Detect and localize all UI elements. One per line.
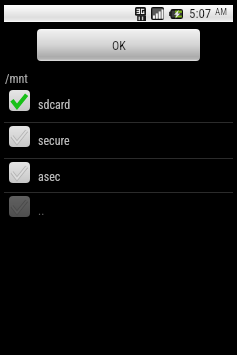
button[interactable]: asec [4, 159, 233, 193]
staticText: .. [38, 204, 45, 218]
staticText: secure [38, 134, 70, 148]
staticText: /mnt [5, 72, 28, 86]
button[interactable]: .. [4, 193, 233, 229]
button[interactable]: sdcard [4, 87, 233, 123]
other: Battery charging [169, 9, 183, 19]
other: 3G network [135, 7, 146, 21]
staticText: 5:07 [189, 6, 212, 21]
staticText: sdcard [38, 98, 71, 112]
other: Signal strength [151, 7, 164, 20]
staticText: OK [112, 39, 126, 53]
button[interactable]: secure [4, 123, 233, 159]
button[interactable]: OK [37, 29, 200, 61]
staticText: AM [215, 7, 227, 18]
staticText: asec [38, 170, 61, 184]
